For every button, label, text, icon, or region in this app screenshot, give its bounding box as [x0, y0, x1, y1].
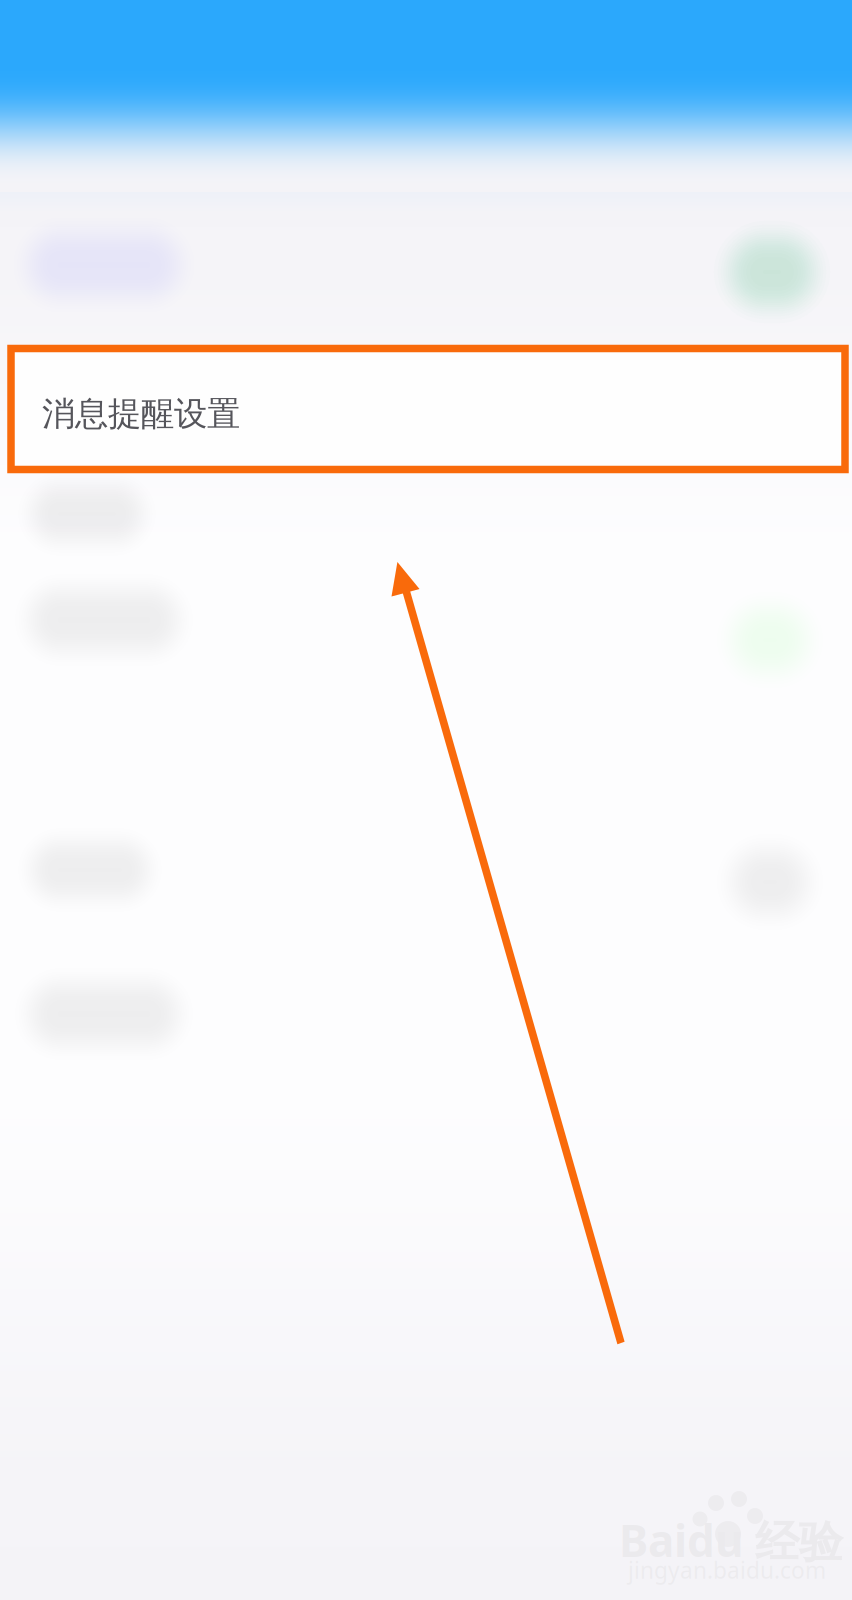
staticText: jingyan.baidu.com: [628, 1555, 826, 1585]
staticText: Baidu 经验: [619, 1511, 843, 1569]
button[interactable]: 消息提醒设置: [11, 348, 845, 469]
staticText: 消息提醒设置: [42, 393, 240, 434]
